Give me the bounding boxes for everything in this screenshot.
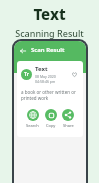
- staticText: a book or other written or printed work: [21, 89, 76, 101]
- staticText: 08 May 2020 04:58:46 pm: [35, 74, 70, 84]
- staticText: Copy: [46, 123, 56, 128]
- staticText: Text: [35, 65, 48, 73]
- button[interactable]: Back: [18, 46, 27, 55]
- button[interactable]: Search: [24, 108, 41, 129]
- button[interactable]: Favorite: [70, 70, 79, 79]
- button[interactable]: Copy: [43, 108, 59, 129]
- staticText: Scanning Result: [15, 27, 84, 39]
- button[interactable]: Share: [60, 108, 76, 129]
- staticText: Scan Result: [31, 46, 65, 54]
- staticText: Text: [33, 4, 66, 24]
- staticText: Share: [63, 123, 74, 128]
- staticText: Tr: [24, 71, 29, 78]
- staticText: Search: [26, 123, 39, 128]
